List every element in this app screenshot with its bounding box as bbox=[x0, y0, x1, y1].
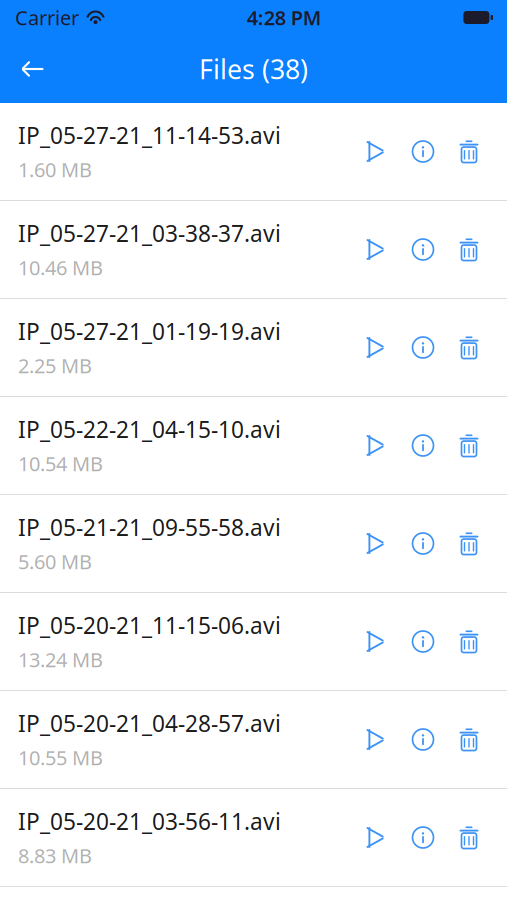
button[interactable]: IP_05-20-21_04-28-57.avi bbox=[0, 691, 507, 788]
button[interactable]: IP_05-27-21_01-19-19.avi bbox=[0, 299, 507, 396]
button[interactable]: IP_05-22-21_04-15-10.avi bbox=[0, 397, 507, 494]
button[interactable]: Back bbox=[6, 47, 60, 91]
button[interactable]: Play IP_05-22-21_04-15-10.avi bbox=[354, 397, 400, 494]
button[interactable]: Info for IP_05-27-21_01-19-19.avi bbox=[400, 299, 446, 396]
staticText: 4:28 PM bbox=[247, 4, 322, 31]
staticText: IP_05-27-21_11-14-53.avi bbox=[18, 120, 281, 150]
staticText: 8.83 MB bbox=[18, 842, 92, 869]
button[interactable]: IP_05-20-21_11-15-06.avi bbox=[0, 593, 507, 690]
staticText: 10.46 MB bbox=[18, 254, 103, 281]
button[interactable]: Info for IP_05-22-21_04-15-10.avi bbox=[400, 397, 446, 494]
staticText: IP_05-27-21_01-19-19.avi bbox=[18, 316, 281, 346]
staticText: IP_05-20-21_04-28-57.avi bbox=[18, 708, 281, 738]
button[interactable]: Play IP_05-20-21_11-15-06.avi bbox=[354, 593, 400, 690]
button[interactable]: Info for IP_05-21-21_09-55-58.avi bbox=[400, 495, 446, 592]
button[interactable]: Play IP_05-27-21_01-19-19.avi bbox=[354, 299, 400, 396]
button[interactable]: Delete IP_05-20-21_11-15-06.avi bbox=[446, 593, 492, 690]
staticText: IP_05-27-21_03-38-37.avi bbox=[18, 218, 281, 248]
button[interactable]: Info for IP_05-20-21_03-56-11.avi bbox=[400, 789, 446, 886]
button[interactable]: IP_05-27-21_11-14-53.avi bbox=[0, 103, 507, 200]
button[interactable]: Delete IP_05-20-21_04-28-57.avi bbox=[446, 691, 492, 788]
button[interactable]: IP_05-27-21_03-38-37.avi bbox=[0, 201, 507, 298]
staticText: Carrier bbox=[15, 4, 79, 31]
button[interactable]: Delete IP_05-22-21_04-15-10.avi bbox=[446, 397, 492, 494]
button[interactable]: Delete IP_05-20-21_03-56-11.avi bbox=[446, 789, 492, 886]
staticText: IP_05-22-21_04-15-10.avi bbox=[18, 414, 281, 444]
staticText: IP_05-20-21_03-56-11.avi bbox=[18, 806, 281, 836]
staticText: 1.60 MB bbox=[18, 156, 92, 183]
button[interactable]: Delete IP_05-27-21_03-38-37.avi bbox=[446, 201, 492, 298]
button[interactable]: Play IP_05-27-21_03-38-37.avi bbox=[354, 201, 400, 298]
button[interactable]: Delete IP_05-21-21_09-55-58.avi bbox=[446, 495, 492, 592]
button[interactable]: Info for IP_05-27-21_11-14-53.avi bbox=[400, 103, 446, 200]
button[interactable]: Info for IP_05-27-21_03-38-37.avi bbox=[400, 201, 446, 298]
button[interactable]: Info for IP_05-20-21_04-28-57.avi bbox=[400, 691, 446, 788]
staticText: 10.54 MB bbox=[18, 450, 103, 477]
staticText: 10.55 MB bbox=[18, 744, 103, 771]
button[interactable]: Info for IP_05-20-21_11-15-06.avi bbox=[400, 593, 446, 690]
button[interactable]: Play IP_05-21-21_09-55-58.avi bbox=[354, 495, 400, 592]
staticText: 2.25 MB bbox=[18, 352, 92, 379]
button[interactable]: Delete IP_05-27-21_01-19-19.avi bbox=[446, 299, 492, 396]
button[interactable]: IP_05-21-21_09-55-58.avi bbox=[0, 495, 507, 592]
staticText: IP_05-20-21_11-15-06.avi bbox=[18, 610, 281, 640]
staticText: 5.60 MB bbox=[18, 548, 92, 575]
button[interactable]: Play IP_05-20-21_04-28-57.avi bbox=[354, 691, 400, 788]
staticText: 13.24 MB bbox=[18, 646, 103, 673]
button[interactable]: Delete IP_05-27-21_11-14-53.avi bbox=[446, 103, 492, 200]
button[interactable]: IP_05-20-21_03-56-11.avi bbox=[0, 789, 507, 886]
staticText: IP_05-21-21_09-55-58.avi bbox=[18, 512, 281, 542]
staticText: Files (38) bbox=[199, 51, 308, 87]
button[interactable]: Play IP_05-20-21_03-56-11.avi bbox=[354, 789, 400, 886]
button[interactable]: Play IP_05-27-21_11-14-53.avi bbox=[354, 103, 400, 200]
